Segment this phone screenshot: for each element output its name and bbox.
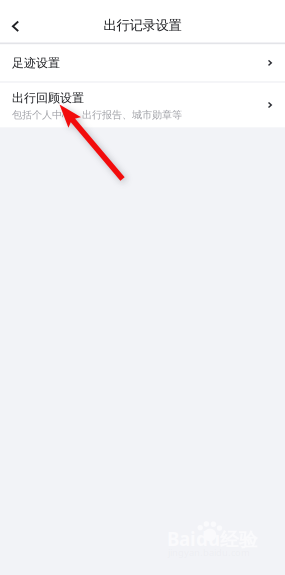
staticText: 包括个人中心、出行报告、城市勋章等: [12, 108, 182, 121]
button[interactable]: 足迹设置: [0, 44, 285, 81]
staticText: 足迹设置: [12, 55, 60, 70]
button[interactable]: 出行回顾设置: [0, 83, 285, 127]
staticText: 出行回顾设置: [12, 91, 84, 105]
staticText: 出行记录设置: [103, 17, 181, 34]
staticText: Baidu经验: [167, 526, 258, 551]
button[interactable]: Back: [0, 0, 33, 43]
